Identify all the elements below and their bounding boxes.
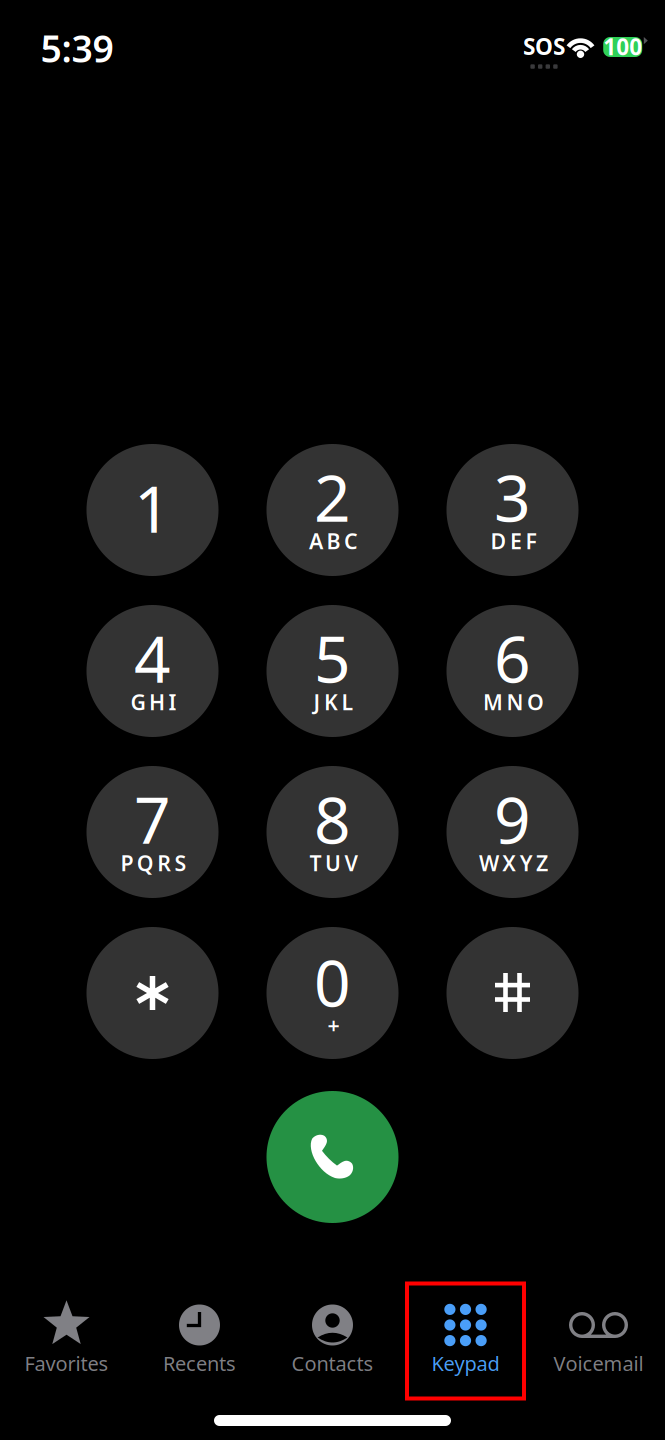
staticText: N	[506, 688, 523, 716]
button[interactable]: 1	[86, 444, 218, 576]
button[interactable]: Call	[266, 1091, 398, 1223]
staticText: 5:39	[40, 23, 113, 73]
staticText: T	[310, 849, 322, 877]
button[interactable]: Pound	[446, 927, 578, 1059]
staticText: Voicemail	[553, 1350, 643, 1377]
staticText: M	[483, 688, 503, 716]
staticText: D	[491, 527, 507, 555]
staticText: Recents	[163, 1350, 236, 1377]
staticText: G	[131, 688, 146, 716]
staticText: K	[324, 688, 338, 716]
staticText: L	[341, 688, 353, 716]
button[interactable]: Favorites	[0, 1283, 133, 1399]
button[interactable]: 9	[446, 766, 578, 898]
staticText: O	[527, 688, 544, 716]
button[interactable]: Recents	[133, 1283, 266, 1399]
staticText: 8	[314, 776, 351, 861]
staticText: 7	[134, 776, 171, 861]
button[interactable]: 3	[446, 444, 578, 576]
staticText: A	[309, 527, 323, 555]
button[interactable]: 7	[86, 766, 218, 898]
staticText: SOS	[523, 31, 565, 61]
button[interactable]: Contacts	[266, 1283, 399, 1399]
staticText: Z	[536, 849, 548, 877]
staticText: 3	[494, 454, 531, 539]
staticText: +	[327, 1011, 339, 1039]
staticText: Keypad	[431, 1350, 499, 1377]
staticText: 1	[134, 465, 171, 550]
staticText: P	[120, 849, 133, 877]
staticText: E	[510, 527, 522, 555]
staticText: Y	[520, 849, 533, 877]
button[interactable]: Keypad	[399, 1283, 532, 1399]
staticText: Q	[137, 849, 154, 877]
staticText: 4	[134, 615, 171, 700]
staticText: 2	[314, 454, 351, 539]
staticText: 0	[314, 939, 351, 1024]
staticText: F	[525, 527, 536, 555]
button[interactable]: 0	[266, 927, 398, 1059]
staticText: V	[344, 849, 357, 877]
staticText: J	[314, 688, 321, 716]
staticText: X	[502, 849, 516, 877]
staticText: U	[325, 849, 341, 877]
staticText: 9	[494, 776, 531, 861]
staticText: 6	[494, 615, 531, 700]
staticText: 5	[314, 615, 351, 700]
staticText: R	[157, 849, 171, 877]
staticText: Favorites	[24, 1350, 108, 1377]
staticText: Contacts	[291, 1350, 373, 1377]
staticText: W	[479, 849, 499, 877]
button[interactable]: 5	[266, 605, 398, 737]
button[interactable]: Voicemail	[532, 1283, 665, 1399]
staticText: I	[168, 688, 176, 716]
staticText: S	[175, 849, 187, 877]
button[interactable]: 4	[86, 605, 218, 737]
button[interactable]: Star	[86, 927, 218, 1059]
staticText: 100	[603, 31, 642, 61]
button[interactable]: 8	[266, 766, 398, 898]
staticText: B	[326, 527, 340, 555]
button[interactable]: 2	[266, 444, 398, 576]
staticText: C	[344, 527, 358, 555]
button[interactable]: 6	[446, 605, 578, 737]
staticText: H	[149, 688, 165, 716]
